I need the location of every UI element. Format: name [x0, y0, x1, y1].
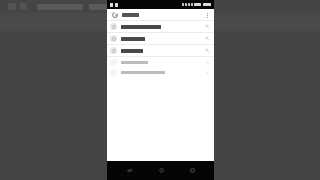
button[interactable]: More options	[203, 11, 211, 19]
button[interactable]: Insert suggestion	[204, 35, 211, 42]
button[interactable]: Search	[107, 9, 214, 20]
button[interactable]: Insert suggestion	[204, 59, 211, 66]
button[interactable]: Insert suggestion	[107, 57, 214, 67]
button[interactable]: Insert suggestion	[107, 67, 214, 77]
button[interactable]: Search	[110, 10, 119, 19]
button[interactable]: Recent apps	[182, 161, 202, 180]
button[interactable]: Insert suggestion	[107, 33, 214, 44]
button[interactable]: Home	[151, 161, 171, 180]
button[interactable]: Insert suggestion	[204, 69, 211, 76]
button[interactable]: Back	[119, 161, 139, 180]
button[interactable]: Insert suggestion	[107, 21, 214, 32]
button[interactable]: Insert suggestion	[204, 47, 211, 54]
button[interactable]: Insert suggestion	[204, 23, 211, 30]
button[interactable]: Insert suggestion	[107, 45, 214, 56]
